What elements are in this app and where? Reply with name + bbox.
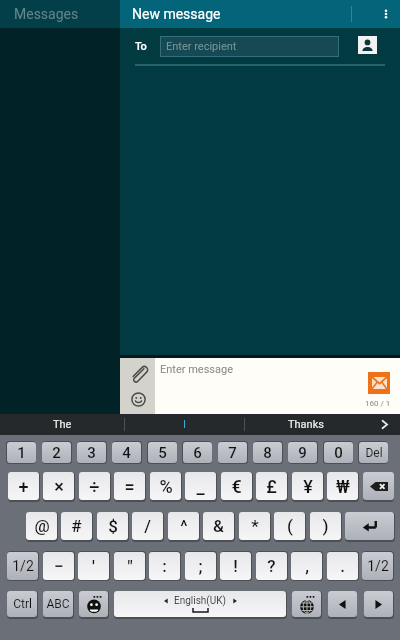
staticText: *	[251, 516, 259, 536]
staticText: =	[124, 476, 135, 497]
staticText: @	[34, 516, 50, 536]
button[interactable]: ,	[291, 552, 322, 580]
staticText: I	[183, 418, 186, 431]
button[interactable]: ;	[185, 552, 216, 580]
button[interactable]: Space	[114, 591, 286, 617]
button[interactable]: ABC	[43, 591, 73, 617]
button[interactable]: −	[43, 552, 74, 580]
button[interactable]: Emoji	[79, 591, 108, 617]
staticText: !	[233, 556, 238, 576]
button[interactable]: 6	[183, 442, 212, 463]
staticText: $	[108, 516, 118, 536]
staticText: ;	[198, 556, 203, 576]
staticText: New message	[132, 6, 221, 22]
staticText: &	[213, 516, 224, 536]
button[interactable]: Enter recipient	[160, 36, 339, 57]
button[interactable]: ₩	[327, 472, 358, 500]
button[interactable]: Right	[364, 591, 393, 617]
button[interactable]: 0	[324, 442, 353, 463]
button[interactable]: Change language	[292, 591, 321, 617]
button[interactable]: 1	[7, 442, 36, 463]
staticText: €	[231, 476, 242, 497]
staticText: 4	[122, 444, 131, 462]
button[interactable]: :	[149, 552, 180, 580]
button[interactable]: Backspace	[363, 472, 394, 500]
button[interactable]: )	[310, 512, 341, 540]
staticText: 6	[193, 444, 202, 462]
button[interactable]: "	[114, 552, 145, 580]
button[interactable]: 4	[112, 442, 141, 463]
button[interactable]: More suggestions	[368, 414, 400, 435]
button[interactable]: .	[327, 552, 358, 580]
button[interactable]: (	[274, 512, 305, 540]
staticText: To	[135, 40, 147, 53]
button[interactable]: Del	[359, 442, 388, 463]
button[interactable]: 1/2	[7, 552, 38, 580]
button[interactable]: Enter	[345, 512, 394, 540]
button[interactable]: Attach	[126, 361, 150, 385]
button[interactable]: ÷	[79, 472, 110, 500]
staticText: English(UK)	[174, 595, 227, 607]
button[interactable]: 7	[218, 442, 247, 463]
button[interactable]: The	[0, 414, 124, 435]
button[interactable]: @	[26, 512, 57, 540]
staticText: 2	[52, 444, 61, 462]
button[interactable]: =	[114, 472, 145, 500]
staticText: Ctrl	[13, 597, 32, 611]
button[interactable]: Contacts	[358, 36, 377, 54]
button[interactable]: I	[124, 414, 244, 435]
button[interactable]: +	[8, 472, 39, 500]
staticText: ?	[267, 556, 276, 576]
button[interactable]: £	[256, 472, 287, 500]
button[interactable]: Left	[328, 591, 357, 617]
button[interactable]: '	[78, 552, 109, 580]
button[interactable]: 3	[77, 442, 106, 463]
button[interactable]: ¥	[292, 472, 323, 500]
button[interactable]: ^	[168, 512, 199, 540]
staticText: ,	[305, 556, 309, 576]
button[interactable]: $	[97, 512, 128, 540]
staticText: The	[53, 418, 72, 431]
button[interactable]: ×	[43, 472, 74, 500]
staticText: 160 / 1	[365, 399, 391, 408]
button[interactable]: More options	[372, 0, 400, 28]
staticText: ₩	[336, 476, 350, 497]
button[interactable]: €	[221, 472, 252, 500]
staticText: 8	[263, 444, 272, 462]
button[interactable]: Emoji	[126, 387, 150, 411]
staticText: Messages	[14, 6, 79, 22]
staticText: ¥	[303, 476, 313, 497]
button[interactable]: #	[61, 512, 92, 540]
staticText: ABC	[46, 597, 70, 611]
button[interactable]: *	[239, 512, 270, 540]
staticText: ×	[54, 476, 64, 497]
staticText: ^	[180, 516, 188, 536]
staticText: £	[266, 476, 277, 497]
button[interactable]: %	[150, 472, 181, 500]
staticText: '	[92, 556, 95, 576]
button[interactable]: Thanks	[244, 414, 368, 435]
staticText: 5	[158, 444, 167, 462]
button[interactable]: &	[203, 512, 234, 540]
button[interactable]: !	[220, 552, 251, 580]
staticText: Del	[365, 446, 383, 460]
button[interactable]: 1/2	[362, 552, 393, 580]
button[interactable]: 9	[288, 442, 317, 463]
staticText: .	[340, 556, 345, 576]
staticText: _	[196, 476, 205, 497]
staticText: 1/2	[367, 558, 389, 574]
staticText: 0	[334, 444, 343, 462]
button[interactable]: /	[132, 512, 163, 540]
button[interactable]: 5	[148, 442, 177, 463]
staticText: %	[159, 476, 173, 497]
staticText: #	[71, 516, 82, 536]
staticText: ÷	[89, 476, 100, 497]
button[interactable]: Send message	[368, 372, 390, 394]
button[interactable]: 2	[42, 442, 71, 463]
staticText: )	[322, 516, 329, 536]
staticText: /	[144, 516, 151, 536]
button[interactable]: _	[185, 472, 216, 500]
button[interactable]: 8	[253, 442, 282, 463]
button[interactable]: Ctrl	[7, 591, 37, 617]
button[interactable]: ?	[256, 552, 287, 580]
